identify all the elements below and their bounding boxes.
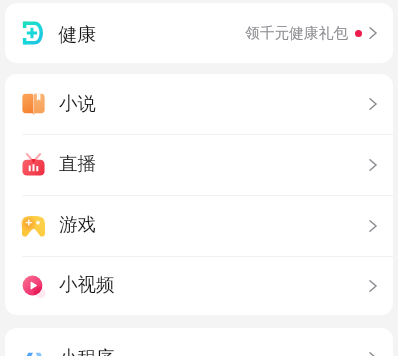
staticText: 游戏 xyxy=(59,213,96,236)
button[interactable]: 健康 xyxy=(5,3,393,63)
staticText: 领千元健康礼包 xyxy=(245,24,348,43)
button[interactable]: 小说 xyxy=(5,74,393,134)
button[interactable]: 游戏 xyxy=(5,195,393,256)
staticText: 健康 xyxy=(58,23,96,47)
staticText: 小说 xyxy=(59,92,96,115)
staticText: 直播 xyxy=(59,152,96,175)
button[interactable]: 小程序 xyxy=(5,328,393,356)
button[interactable]: 小视频 xyxy=(5,256,393,315)
button[interactable]: 直播 xyxy=(5,134,393,195)
staticText: 小程序 xyxy=(59,346,115,356)
staticText: 小视频 xyxy=(59,273,115,296)
